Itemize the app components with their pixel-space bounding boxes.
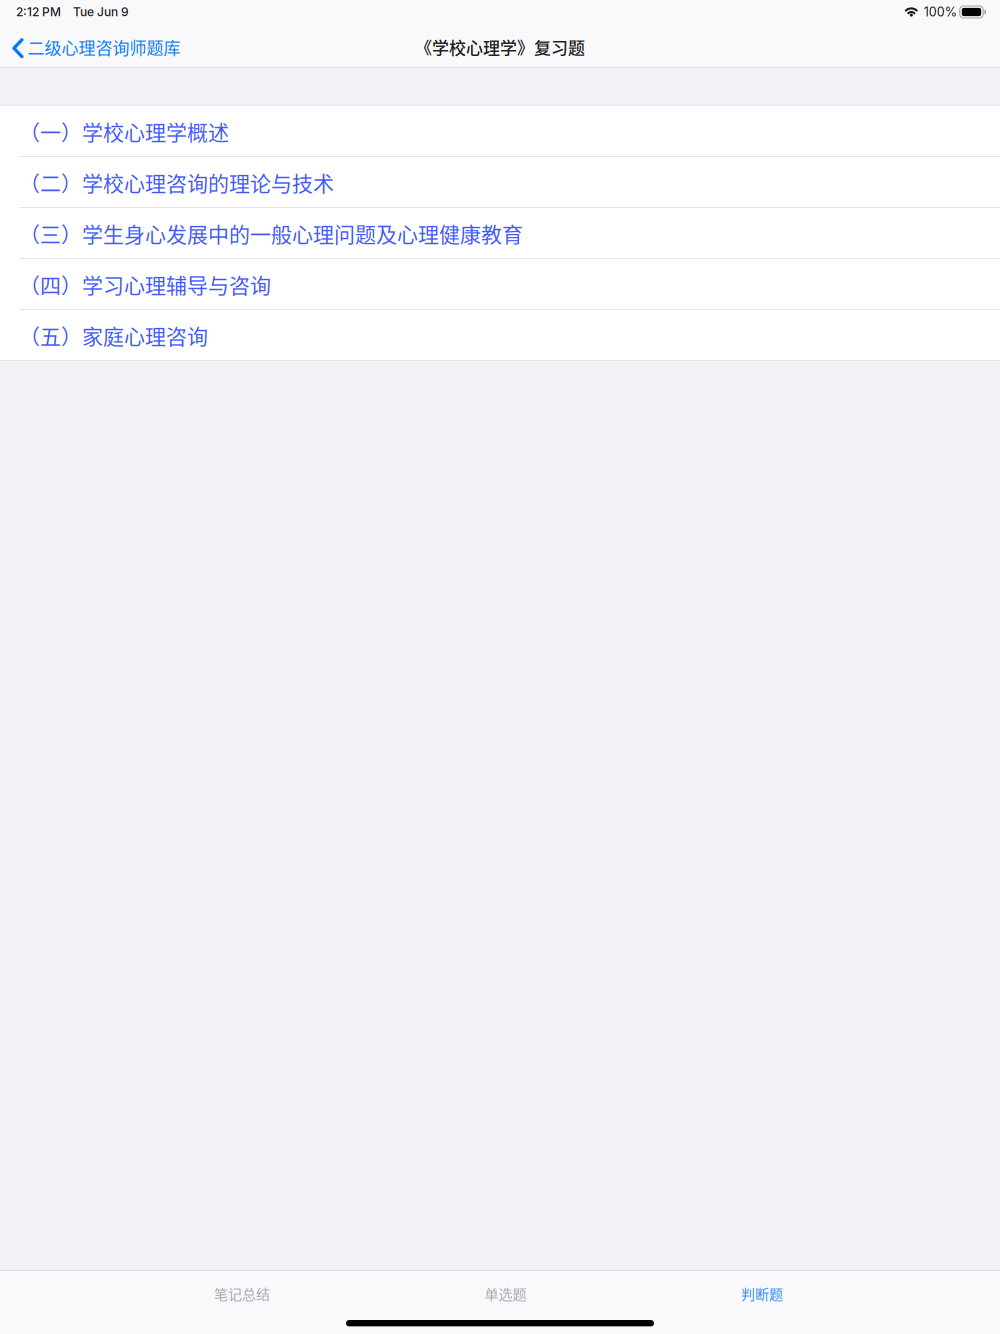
staticText: （二）学校心理咨询的理论与技术: [19, 167, 334, 197]
button[interactable]: 单选题: [390, 1271, 620, 1320]
button[interactable]: 判断题: [647, 1271, 877, 1320]
button[interactable]: （三）学生身心发展中的一般心理问题及心理健康教育: [0, 208, 1000, 258]
button[interactable]: （一）学校心理学概述: [0, 106, 1000, 156]
button[interactable]: 二级心理咨询师题库: [0, 30, 189, 64]
staticText: 单选题: [484, 1283, 526, 1304]
staticText: 100%: [924, 4, 957, 20]
button[interactable]: （四）学习心理辅导与咨询: [0, 259, 1000, 309]
staticText: 笔记总结: [214, 1283, 270, 1304]
staticText: 《学校心理学》复习题: [415, 35, 585, 59]
button[interactable]: （五）家庭心理咨询: [0, 310, 1000, 360]
staticText: （五）家庭心理咨询: [19, 320, 208, 350]
button[interactable]: 笔记总结: [127, 1271, 357, 1320]
staticText: （三）学生身心发展中的一般心理问题及心理健康教育: [19, 218, 523, 248]
staticText: （一）学校心理学概述: [19, 116, 229, 146]
staticText: 2:12 PM: [16, 5, 61, 19]
staticText: Tue Jun 9: [73, 5, 129, 19]
staticText: 二级心理咨询师题库: [28, 35, 181, 59]
staticText: 判断题: [741, 1283, 783, 1304]
staticText: （四）学习心理辅导与咨询: [19, 269, 271, 299]
button[interactable]: （二）学校心理咨询的理论与技术: [0, 157, 1000, 207]
